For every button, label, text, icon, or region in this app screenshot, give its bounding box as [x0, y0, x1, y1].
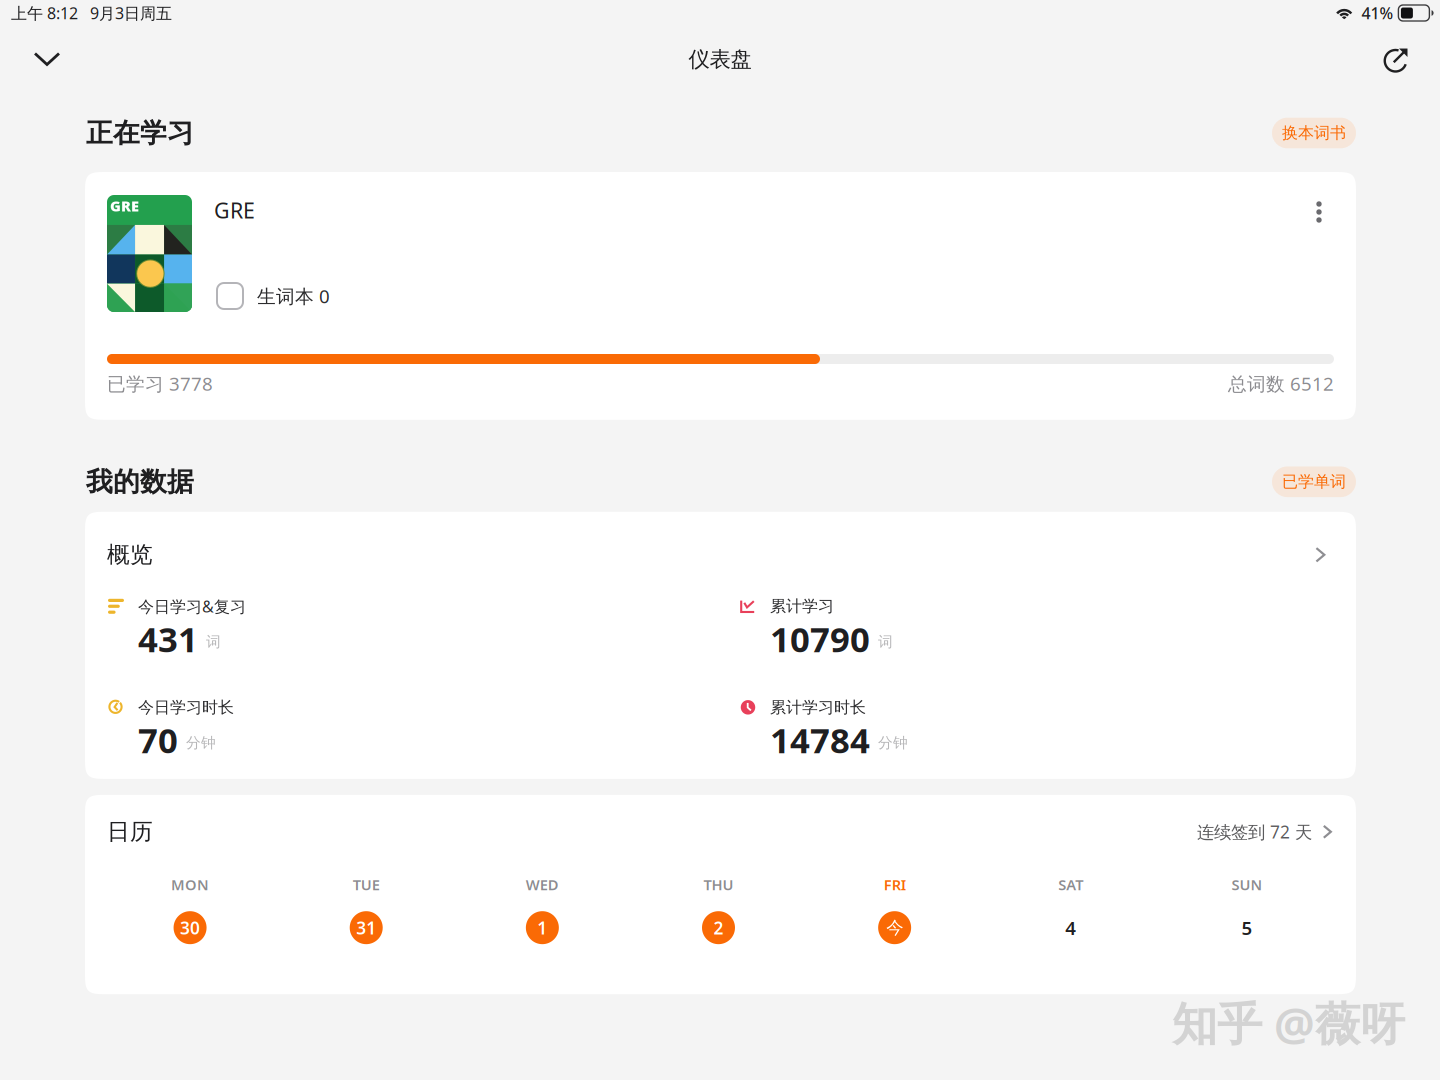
staticText: 日历	[107, 818, 153, 846]
staticText: TUE	[353, 875, 380, 894]
staticText: 连续签到 72 天	[1197, 820, 1312, 843]
staticText: 词	[206, 633, 221, 651]
staticText: 概览	[107, 541, 153, 569]
staticText: GRE	[214, 196, 255, 224]
button[interactable]: FRI	[878, 875, 911, 944]
button[interactable]: Collapse	[32, 44, 62, 74]
staticText: 70	[138, 717, 178, 763]
staticText: 431	[138, 616, 198, 662]
button[interactable]: More options	[1305, 198, 1333, 226]
button[interactable]: 换本词书	[1272, 118, 1356, 148]
button[interactable]: WED	[526, 875, 559, 944]
staticText: 2	[713, 916, 723, 939]
staticText: 仪表盘	[688, 46, 751, 73]
staticText: 31	[356, 916, 376, 939]
staticText: 累计学习	[770, 596, 834, 616]
staticText: 今	[886, 917, 903, 938]
staticText: 14784	[770, 717, 870, 763]
staticText: 上午 8:12 9月3日周五	[11, 2, 172, 24]
button[interactable]: 连续签到 72 天	[1197, 820, 1336, 843]
staticText: THU	[703, 875, 733, 894]
button[interactable]: TUE	[350, 875, 383, 944]
staticText: 词	[878, 633, 893, 651]
staticText: 换本词书	[1282, 123, 1346, 143]
staticText: MON	[171, 875, 209, 894]
staticText: SUN	[1231, 875, 1262, 894]
staticText: 累计学习时长	[770, 697, 866, 717]
staticText: 10790	[770, 616, 870, 662]
staticText: 30	[180, 916, 200, 939]
staticText: 5	[1241, 915, 1252, 940]
staticText: SAT	[1058, 875, 1083, 894]
button[interactable]: GRE	[214, 196, 255, 224]
button[interactable]: GRE word book	[107, 195, 192, 312]
staticText: 41%	[1361, 2, 1393, 24]
button[interactable]: SAT	[1054, 875, 1087, 944]
staticText: 已学单词	[1282, 472, 1346, 492]
staticText: 分钟	[878, 734, 908, 752]
button[interactable]: Overview details	[1306, 541, 1334, 569]
button[interactable]: SUN	[1230, 875, 1263, 944]
button[interactable]: THU	[702, 875, 735, 944]
staticText: 4	[1065, 915, 1076, 940]
button[interactable]: MON	[171, 875, 209, 944]
staticText: 我的数据	[86, 465, 194, 498]
staticText: 1	[537, 916, 547, 939]
staticText: 今日学习时长	[138, 697, 234, 717]
staticText: WED	[526, 875, 559, 894]
staticText: 总词数 6512	[1228, 371, 1334, 396]
button[interactable]: Share	[1384, 47, 1409, 72]
staticText: 今日学习&复习	[138, 596, 246, 617]
staticText: FRI	[884, 875, 906, 894]
button[interactable]: 生词本 0	[214, 283, 330, 309]
staticText: 生词本 0	[257, 284, 330, 308]
staticText: GRE	[110, 196, 139, 215]
staticText: 知乎 @薇呀	[1172, 993, 1405, 1053]
button[interactable]: 已学单词	[1272, 466, 1356, 497]
staticText: 正在学习	[86, 117, 194, 149]
staticText: 已学习 3778	[107, 371, 213, 396]
staticText: 分钟	[186, 734, 216, 752]
